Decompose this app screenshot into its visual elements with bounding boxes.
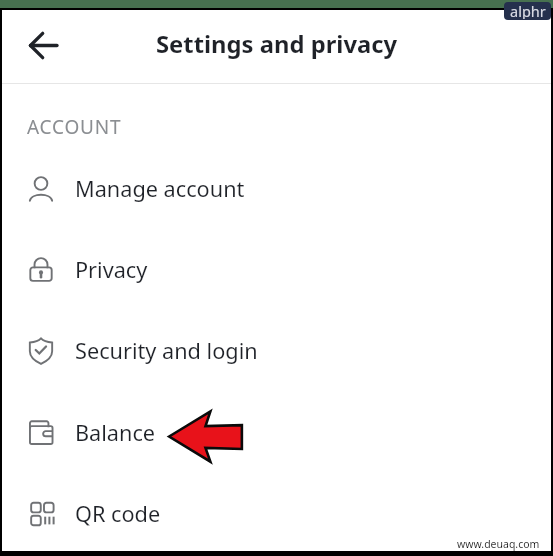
staticText: Settings and privacy <box>156 28 398 60</box>
button[interactable]: Security and login <box>2 310 551 391</box>
staticText: ACCOUNT <box>27 114 122 140</box>
button[interactable]: Back <box>22 23 67 68</box>
button[interactable]: Privacy <box>2 229 551 310</box>
staticText: Security and login <box>75 336 258 366</box>
staticText: Manage account <box>75 174 245 204</box>
staticText: alphr <box>510 2 546 19</box>
button[interactable]: QR code <box>2 473 551 554</box>
staticText: www.deuaq.com <box>457 537 540 551</box>
button[interactable]: Manage account <box>2 148 551 229</box>
button[interactable]: Balance <box>2 392 551 473</box>
staticText: Balance <box>75 418 156 448</box>
staticText: Privacy <box>75 255 148 285</box>
staticText: QR code <box>75 499 161 529</box>
